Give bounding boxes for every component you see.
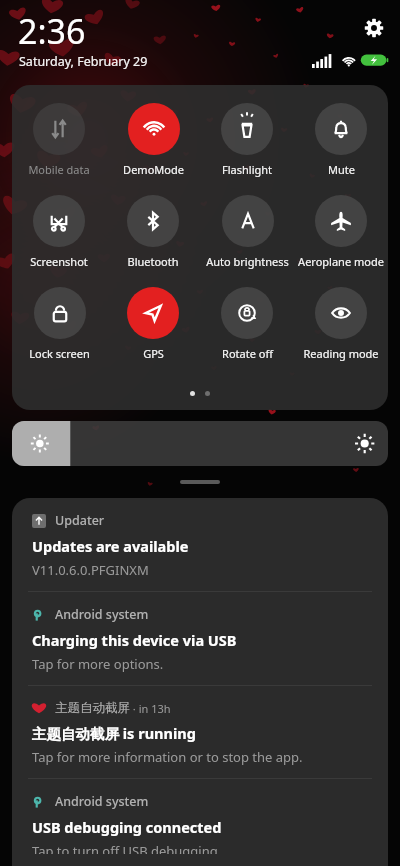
button[interactable]: Updater [12, 498, 388, 591]
staticText: USB debugging connected [32, 817, 222, 837]
button[interactable]: Mute [315, 103, 367, 177]
staticText: 2:36 [18, 8, 86, 54]
staticText: Tap for more information or to stop the … [32, 748, 303, 766]
staticText: Bluetooth [127, 254, 179, 269]
button[interactable]: Drag handle [180, 480, 220, 484]
button[interactable]: Android system [12, 592, 388, 685]
staticText: Updates are available [32, 536, 189, 556]
staticText: Screenshot [30, 254, 88, 269]
staticText: Flashlight [222, 162, 272, 177]
staticText: · in 13h [130, 701, 171, 716]
button[interactable]: Brightness [12, 421, 388, 466]
staticText: Tap to turn off USB debugging [32, 842, 218, 854]
button[interactable]: 主题自动截屏 [12, 686, 388, 778]
button[interactable]: Android system [12, 779, 388, 866]
staticText: Reading mode [303, 346, 379, 361]
staticText: Mute [328, 162, 355, 177]
staticText: Saturday, February 29 [19, 53, 148, 70]
button[interactable]: Aeroplane mode [298, 195, 384, 269]
staticText: DemoMode [123, 162, 184, 177]
button[interactable]: DemoMode [123, 103, 184, 177]
staticText: GPS [143, 346, 164, 361]
button[interactable]: Auto brightness [206, 195, 289, 269]
button[interactable]: Rotate off [221, 287, 273, 361]
staticText: 主题自动截屏 is running [32, 723, 196, 743]
button[interactable]: Settings [358, 12, 390, 44]
staticText: Aeroplane mode [298, 254, 384, 269]
staticText: Updater [55, 512, 105, 529]
staticText: Mobile data [28, 162, 90, 177]
staticText: Android system [55, 793, 149, 810]
button[interactable]: Flashlight [221, 103, 273, 177]
staticText: Lock screen [29, 346, 90, 361]
button[interactable]: GPS [127, 287, 179, 361]
staticText: V11.0.6.0.PFGINXM [32, 561, 149, 579]
staticText: Rotate off [222, 346, 273, 361]
button[interactable]: Mobile data [28, 103, 90, 177]
staticText: Tap for more options. [32, 655, 164, 673]
button[interactable]: Bluetooth [127, 195, 179, 269]
button[interactable]: Reading mode [303, 287, 379, 361]
staticText: Auto brightness [206, 254, 289, 269]
button[interactable]: Screenshot [30, 195, 88, 269]
staticText: 主题自动截屏 [55, 700, 130, 716]
staticText: Android system [55, 606, 149, 623]
staticText: Charging this device via USB [32, 630, 237, 650]
button[interactable]: Lock screen [29, 287, 90, 361]
